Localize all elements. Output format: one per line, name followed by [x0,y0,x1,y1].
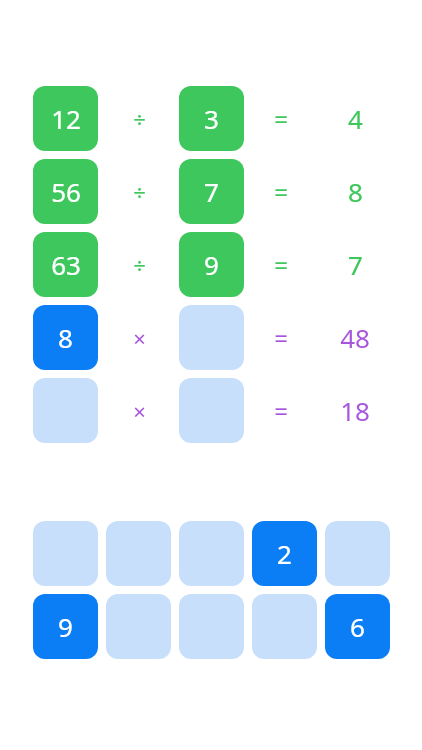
button[interactable]: 12 [33,86,98,151]
button[interactable]: Empty tile [179,594,244,659]
staticText: = [274,102,288,135]
button[interactable]: 6 [325,594,390,659]
staticText: 18 [340,393,370,428]
button[interactable]: 63 [33,232,98,297]
staticText: 9 [204,247,219,282]
staticText: × [133,323,146,353]
button[interactable]: Empty tile [325,521,390,586]
button[interactable]: 9 [179,232,244,297]
button[interactable]: Empty slot [33,378,98,443]
staticText: × [133,396,146,426]
staticText: 48 [340,320,370,355]
staticText: = [274,175,288,208]
button[interactable]: Empty tile [179,521,244,586]
button[interactable]: Empty slot [179,305,244,370]
staticText: 56 [51,174,81,209]
staticText: = [274,394,288,427]
button[interactable]: Empty tile [252,594,317,659]
staticText: 7 [204,174,219,209]
button[interactable]: Empty tile [106,594,171,659]
button[interactable]: 9 [33,594,98,659]
button[interactable]: Empty tile [106,521,171,586]
staticText: 12 [51,101,81,136]
staticText: = [274,321,288,354]
button[interactable]: 56 [33,159,98,224]
staticText: 9 [58,609,73,644]
staticText: = [274,248,288,281]
button[interactable]: 8 [33,305,98,370]
button[interactable]: 2 [252,521,317,586]
staticText: ÷ [133,177,146,207]
staticText: 7 [348,247,363,282]
staticText: 2 [277,536,292,571]
button[interactable]: Empty tile [33,521,98,586]
staticText: 3 [204,101,219,136]
staticText: 4 [348,101,363,136]
button[interactable]: 3 [179,86,244,151]
staticText: 63 [51,247,81,282]
staticText: 8 [348,174,363,209]
staticText: ÷ [133,250,146,280]
button[interactable]: 7 [179,159,244,224]
staticText: ÷ [133,104,146,134]
button[interactable]: Empty slot [179,378,244,443]
staticText: 6 [350,609,365,644]
staticText: 8 [58,320,73,355]
